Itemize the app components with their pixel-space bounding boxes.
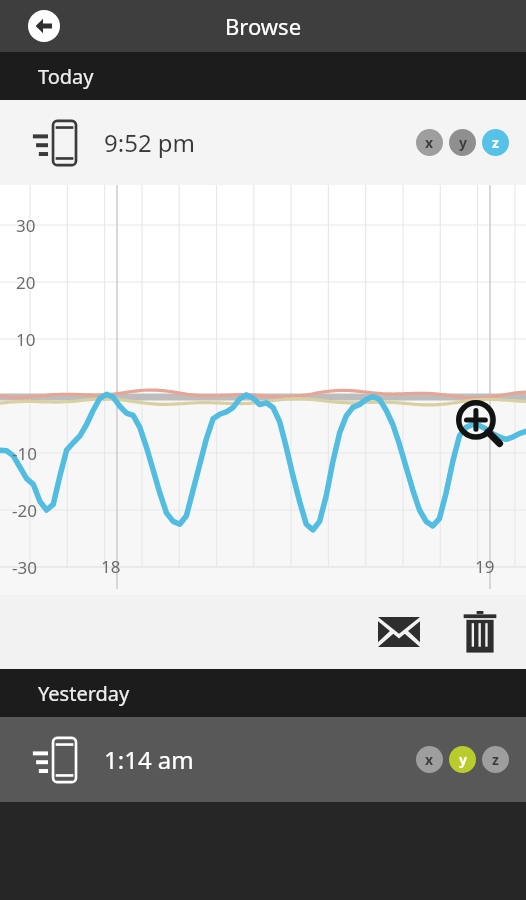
staticText: 20 [16, 271, 36, 294]
button[interactable]: x [416, 746, 443, 773]
button[interactable]: z [482, 746, 509, 773]
staticText: 10 [16, 328, 36, 351]
staticText: z [492, 133, 499, 152]
button[interactable]: 9:52 pm [0, 100, 526, 185]
button[interactable]: Email [371, 604, 427, 660]
staticText: Today [38, 63, 94, 90]
staticText: z [492, 750, 499, 769]
button[interactable]: y [449, 746, 476, 773]
staticText: y [459, 133, 467, 152]
staticText: x [425, 133, 434, 152]
staticText: -20 [12, 499, 37, 522]
button[interactable]: Today [0, 52, 526, 100]
staticText: 18 [101, 555, 121, 578]
staticText: -10 [12, 442, 37, 465]
staticText: Yesterday [38, 680, 130, 707]
staticText: 1:14 am [104, 743, 194, 776]
staticText: 9:52 pm [104, 126, 196, 159]
button[interactable]: Zoom in [452, 397, 504, 449]
button[interactable]: x [416, 129, 443, 156]
staticText: -30 [12, 556, 37, 579]
staticText: 30 [16, 214, 36, 237]
button[interactable]: 1:14 am [0, 717, 526, 802]
button[interactable]: Delete [452, 604, 508, 660]
staticText: Browse [225, 11, 302, 41]
button[interactable]: y [449, 129, 476, 156]
button[interactable]: Yesterday [0, 669, 526, 717]
button[interactable]: z [482, 129, 509, 156]
button[interactable]: Back [27, 9, 61, 43]
staticText: x [425, 750, 434, 769]
staticText: y [459, 750, 467, 769]
staticText: 19 [475, 555, 495, 578]
